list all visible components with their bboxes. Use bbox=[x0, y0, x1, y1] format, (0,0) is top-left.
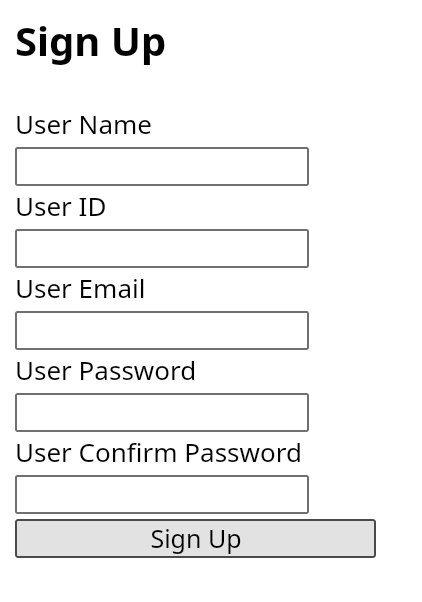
staticText: User Password bbox=[15, 352, 197, 387]
button[interactable]: Sign Up bbox=[15, 519, 376, 558]
staticText: Sign Up bbox=[15, 13, 167, 67]
button[interactable] bbox=[15, 475, 309, 514]
staticText: User ID bbox=[15, 188, 107, 223]
staticText: User Name bbox=[15, 106, 152, 141]
staticText: User Confirm Password bbox=[15, 434, 302, 469]
staticText: User Email bbox=[15, 270, 146, 305]
button[interactable] bbox=[15, 147, 309, 186]
button[interactable] bbox=[15, 393, 309, 432]
button[interactable] bbox=[15, 229, 309, 268]
button[interactable] bbox=[15, 311, 309, 350]
staticText: Sign Up bbox=[150, 521, 242, 555]
